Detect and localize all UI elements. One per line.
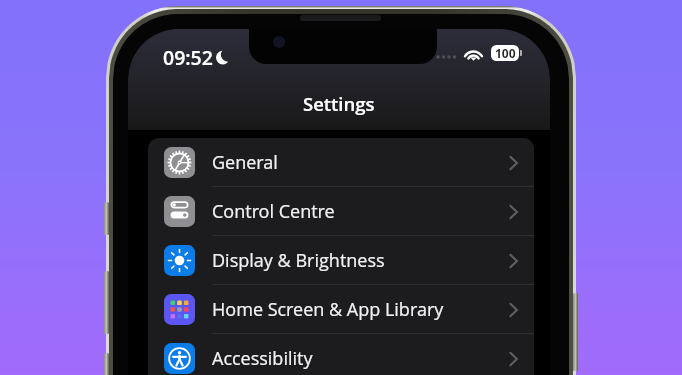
button[interactable]: General <box>148 138 534 187</box>
staticText: General <box>212 150 278 175</box>
staticText: Control Centre <box>212 199 335 224</box>
staticText: Display & Brightness <box>212 248 385 273</box>
staticText: Accessibility <box>212 346 313 371</box>
button[interactable]: Home Screen & App Library <box>148 285 534 334</box>
staticText: 09:52 <box>163 44 213 71</box>
button[interactable]: Control Centre <box>148 187 534 236</box>
button[interactable]: Accessibility <box>148 334 534 375</box>
staticText: Settings <box>303 91 375 116</box>
staticText: 100 <box>495 45 516 61</box>
button[interactable]: Display & Brightness <box>148 236 534 285</box>
staticText: Home Screen & App Library <box>212 297 444 322</box>
